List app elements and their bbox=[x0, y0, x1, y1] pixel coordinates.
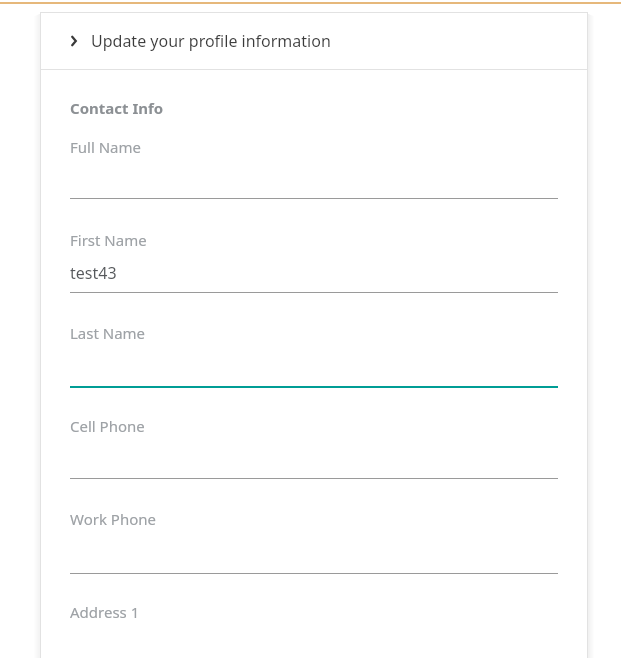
staticText: Work Phone bbox=[70, 509, 156, 529]
staticText: test43 bbox=[70, 262, 117, 284]
staticText: Full Name bbox=[70, 137, 141, 157]
other: Expand section bbox=[68, 34, 82, 48]
staticText: First Name bbox=[70, 230, 147, 250]
button[interactable] bbox=[70, 230, 558, 298]
staticText: Cell Phone bbox=[70, 416, 145, 436]
button[interactable]: Expand section bbox=[40, 12, 588, 69]
button[interactable] bbox=[70, 509, 558, 579]
button[interactable] bbox=[70, 323, 558, 392]
staticText: Address 1 bbox=[70, 602, 140, 622]
staticText: Last Name bbox=[70, 323, 146, 343]
button[interactable] bbox=[70, 137, 558, 204]
button[interactable] bbox=[70, 416, 558, 484]
button[interactable] bbox=[70, 602, 558, 648]
staticText: Contact Info bbox=[70, 98, 164, 118]
staticText: Update your profile information bbox=[91, 30, 331, 52]
